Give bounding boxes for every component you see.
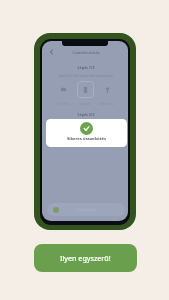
button[interactable]: Hálószoba: [96, 81, 118, 106]
staticText: Lépés 2/3: [63, 112, 109, 117]
staticText: Sikeres összekötés: [46, 136, 127, 142]
staticText: Ilyen egyszerű!: [60, 253, 111, 263]
button[interactable]: Ilyen egyszerű!: [34, 244, 137, 272]
staticText: Nappali: [79, 102, 91, 106]
staticText: Hálószoba: [99, 102, 115, 106]
staticText: Csatlakoztatás: [63, 50, 109, 55]
staticText: Jelöld ki, hol szeretnéd a leolvasót: [46, 73, 126, 78]
button[interactable]: Csatlakozás: [47, 203, 125, 216]
button[interactable]: Konyha: [52, 81, 74, 106]
staticText: Konyha: [57, 102, 69, 106]
staticText: Lépés 1/3: [63, 65, 109, 70]
button[interactable]: Back: [46, 48, 56, 56]
button[interactable]: Nappali: [74, 81, 96, 106]
